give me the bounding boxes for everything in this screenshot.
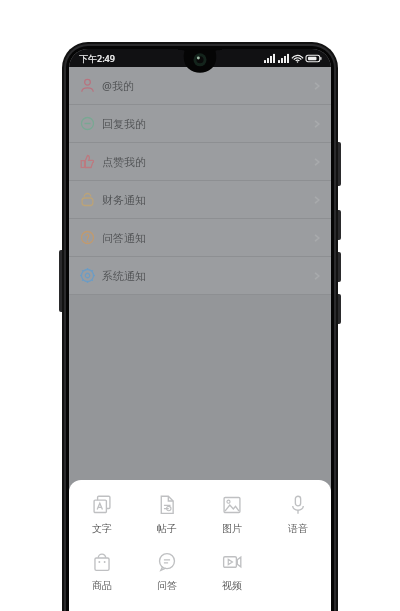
button[interactable]: 语音 [265,492,331,537]
staticText: 系统通知 [102,269,146,283]
button[interactable]: 商品 [69,549,134,594]
staticText: @我的 [102,78,134,93]
button[interactable]: 回复我的 [69,105,331,142]
staticText: 文字 [92,522,112,535]
button[interactable]: 财务通知 [69,181,331,218]
staticText: 商品 [92,579,112,592]
staticText: 财务通知 [102,193,146,207]
staticText: 图片 [222,522,242,535]
button[interactable]: @我的 [69,67,331,104]
button[interactable]: 视频 [199,549,265,594]
staticText: 问答通知 [102,231,146,245]
staticText: 视频 [222,579,242,592]
button[interactable]: 系统通知 [69,257,331,294]
staticText: 回复我的 [102,117,146,131]
button[interactable]: 问答 [134,549,199,594]
staticText: 点赞我的 [102,155,146,169]
staticText: 下午2:49 [79,52,115,64]
staticText: 问答 [157,579,177,592]
button[interactable]: 点赞我的 [69,143,331,180]
button[interactable]: 文字 [69,492,134,537]
staticText: 帖子 [157,522,177,535]
button[interactable]: 帖子 [134,492,199,537]
button[interactable]: 问答通知 [69,219,331,256]
button[interactable]: 图片 [199,492,265,537]
staticText: 语音 [288,522,308,535]
